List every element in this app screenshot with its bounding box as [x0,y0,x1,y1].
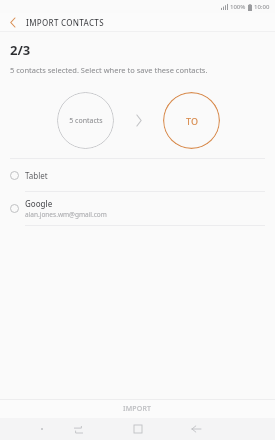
staticText: Tablet [25,170,48,181]
button[interactable]: Google [0,192,275,225]
staticText: alan.jones.wm@gmail.com [25,210,107,219]
staticText: Google [25,198,53,209]
staticText: 5 contacts [69,116,103,126]
button[interactable]: 5 contacts [57,92,114,149]
button[interactable]: Back [185,418,207,440]
button[interactable]: Menu [36,423,48,435]
button[interactable]: Navigate up [0,13,26,31]
button[interactable]: Recents [68,419,88,439]
staticText: IMPORT [123,404,152,414]
button[interactable]: IMPORT [0,400,275,418]
button[interactable]: TO [163,92,220,149]
staticText: 100% [230,3,246,11]
staticText: TO [186,115,198,127]
staticText: 5 contacts selected. Select where to sav… [10,65,208,75]
staticText: 2/3 [10,41,31,59]
staticText: IMPORT CONTACTS [26,17,104,28]
staticText: 10:00 [254,3,270,11]
button[interactable]: Home [127,418,149,440]
button[interactable]: Tablet [0,159,275,191]
